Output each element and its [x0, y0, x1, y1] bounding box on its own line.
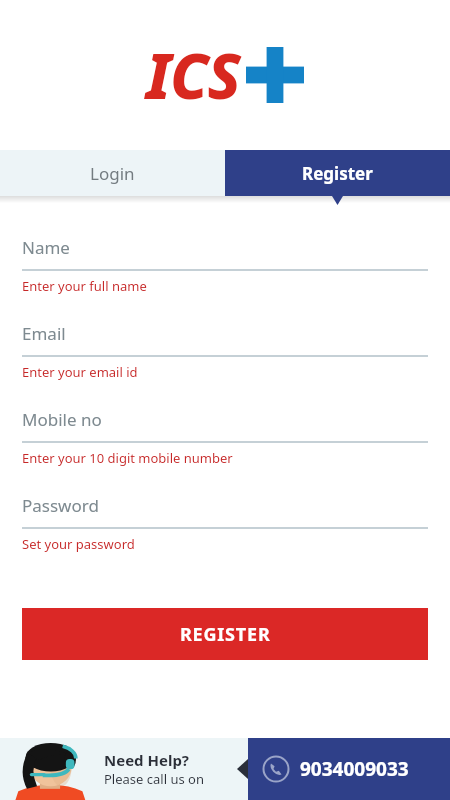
staticText: Set your password — [22, 535, 135, 553]
staticText: Enter your 10 digit mobile number — [22, 449, 233, 467]
button[interactable]: Login — [0, 150, 225, 196]
staticText: Mobile no — [22, 408, 102, 431]
staticText: Name — [22, 236, 70, 259]
button[interactable]: REGISTER — [22, 608, 428, 660]
staticText: Register — [302, 162, 373, 185]
button[interactable]: Call 9034009033 — [248, 738, 450, 800]
staticText: Login — [90, 162, 135, 185]
staticText: Need Help? — [104, 750, 190, 770]
staticText: Email — [22, 322, 66, 345]
staticText: Enter your full name — [22, 277, 147, 295]
staticText: Please call us on — [104, 770, 204, 788]
staticText: REGISTER — [180, 622, 271, 647]
staticText: Enter your email id — [22, 363, 138, 381]
staticText: 9034009033 — [300, 756, 409, 782]
staticText: ICS — [146, 33, 240, 117]
button[interactable]: Register — [225, 150, 450, 196]
staticText: Password — [22, 494, 99, 517]
